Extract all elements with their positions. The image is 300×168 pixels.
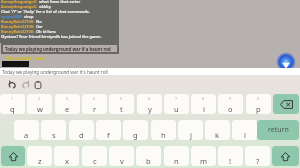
staticText: p: [256, 104, 261, 114]
button[interactable]: Shift: [272, 146, 299, 166]
staticText: f: [107, 130, 110, 140]
button[interactable]: g: [123, 120, 148, 140]
button[interactable]: f: [96, 120, 121, 140]
button[interactable]: h: [151, 120, 176, 140]
button[interactable]: 8: [191, 94, 216, 114]
staticText: e: [65, 104, 70, 114]
button[interactable]: Today we playing underground war it's ha…: [0, 68, 300, 75]
button[interactable]: c: [82, 146, 107, 166]
button[interactable]: a: [14, 120, 39, 140]
button[interactable]: 2: [27, 94, 52, 114]
staticText: 2: [38, 96, 41, 101]
button[interactable]: .: [245, 146, 270, 166]
staticText: Today we playing underground war if a ha…: [5, 46, 111, 52]
button[interactable]: 5: [109, 94, 134, 114]
staticText: Today we playing underground war it's ha…: [2, 69, 108, 75]
staticText: Oh hi fans: [35, 29, 56, 34]
staticText: l: [244, 130, 246, 140]
button[interactable]: Paste: [32, 79, 44, 91]
button[interactable]: z: [27, 146, 52, 166]
staticText: v: [120, 156, 124, 166]
staticText: 4: [93, 96, 96, 101]
button[interactable]: s: [41, 120, 66, 140]
button[interactable]: 9: [218, 94, 243, 114]
staticText: okkky: [38, 4, 51, 9]
staticText: w: [37, 104, 43, 114]
staticText: h: [161, 130, 166, 140]
staticText: k: [215, 130, 220, 140]
staticText: 8: [202, 96, 205, 101]
staticText: i: [203, 104, 205, 114]
staticText: o: [228, 104, 233, 114]
button[interactable]: ,: [218, 146, 243, 166]
staticText: q: [10, 104, 15, 114]
button[interactable]: Undo: [6, 79, 18, 91]
button[interactable]: 1: [0, 94, 25, 114]
staticText: shop: [23, 14, 34, 19]
button[interactable]: b: [136, 146, 161, 166]
staticText: BunnyRabi32100:: [1, 29, 35, 34]
button[interactable]: l: [232, 120, 257, 140]
staticText: m: [200, 156, 208, 166]
button[interactable]: Shift: [1, 146, 25, 166]
staticText: 3: [66, 96, 69, 101]
staticText: return: [268, 125, 289, 135]
button[interactable]: Redo: [20, 79, 32, 91]
staticText: [System] Your friend kirstyndb has joine…: [1, 34, 102, 39]
staticText: d: [79, 130, 84, 140]
button[interactable]: d: [69, 120, 94, 140]
staticText: BunnyRabi32100:: [1, 24, 35, 29]
staticText: j: [190, 130, 192, 140]
button[interactable]: 7: [164, 94, 189, 114]
staticText: AnnoytheguatgoC:: [1, 4, 38, 9]
staticText: Chat '/?' or '/help' for a list of chat …: [1, 9, 90, 14]
button[interactable]: j: [178, 120, 203, 140]
staticText: No: [35, 19, 42, 24]
button[interactable]: 6: [137, 94, 162, 114]
staticText: spoons900:: [1, 14, 23, 19]
staticText: y: [148, 104, 152, 114]
staticText: r: [93, 104, 97, 114]
staticText: what from that enter: [38, 0, 81, 4]
button[interactable]: Today we playing underground war if a ha…: [1, 43, 119, 54]
button[interactable]: return: [257, 120, 299, 140]
button[interactable]: Backspace: [273, 94, 299, 114]
button[interactable]: Extras: [276, 52, 296, 72]
button[interactable]: n: [164, 146, 189, 166]
button[interactable]: 3: [55, 94, 80, 114]
staticText: !: [229, 156, 232, 166]
staticText: g: [133, 130, 138, 140]
staticText: 1: [11, 96, 14, 101]
button[interactable]: 4: [82, 94, 107, 114]
staticText: s: [52, 130, 56, 140]
staticText: Ow: [35, 24, 43, 29]
button[interactable]: k: [205, 120, 230, 140]
staticText: .: [257, 159, 258, 164]
staticText: ,: [230, 159, 231, 164]
staticText: Chat name here: [5, 55, 45, 62]
button[interactable]: m: [191, 146, 216, 166]
staticText: AnnoytheguatgoC:: [1, 0, 38, 4]
staticText: n: [174, 156, 179, 166]
staticText: 9: [229, 96, 232, 101]
staticText: b: [146, 156, 151, 166]
staticText: a: [24, 130, 29, 140]
staticText: t: [120, 104, 123, 114]
button[interactable]: v: [109, 146, 134, 166]
staticText: 0: [257, 96, 260, 101]
staticText: u: [174, 104, 179, 114]
staticText: 5: [120, 96, 123, 101]
staticText: BunnyRabi32100:: [1, 19, 35, 24]
staticText: z: [38, 156, 42, 166]
staticText: x: [65, 156, 69, 166]
button[interactable]: 0: [246, 94, 271, 114]
staticText: c: [93, 156, 97, 166]
button[interactable]: x: [54, 146, 79, 166]
staticText: ?: [256, 156, 260, 166]
staticText: 7: [175, 96, 178, 101]
staticText: 6: [148, 96, 151, 101]
